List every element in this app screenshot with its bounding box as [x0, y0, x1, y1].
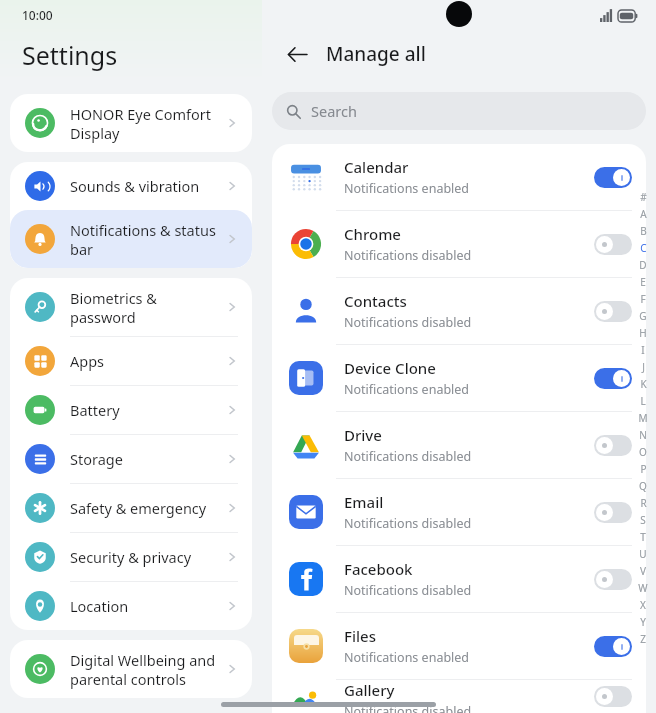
button[interactable]: Files	[272, 613, 646, 679]
button[interactable]: P	[635, 460, 651, 477]
staticText: Gallery	[344, 680, 395, 700]
button[interactable]: On	[594, 368, 632, 389]
button[interactable]: E	[635, 273, 651, 290]
button[interactable]: Drive	[272, 412, 646, 478]
staticText: I	[641, 343, 645, 357]
button[interactable]: Back	[280, 37, 314, 71]
staticText: D	[639, 258, 647, 272]
staticText: Location	[70, 596, 224, 616]
staticText: C	[640, 241, 647, 255]
staticText: Notifications enabled	[344, 180, 470, 197]
button[interactable]: T	[635, 528, 651, 545]
button[interactable]: Biometrics & password	[10, 278, 252, 336]
button[interactable]: R	[635, 494, 651, 511]
staticText: Z	[640, 632, 646, 646]
button[interactable]: Apps	[10, 337, 252, 385]
staticText: Search	[311, 101, 357, 121]
staticText: Notifications disabled	[344, 515, 472, 532]
button[interactable]: O	[635, 443, 651, 460]
button[interactable]: D	[635, 256, 651, 273]
button[interactable]: Off	[594, 435, 632, 456]
staticText: K	[640, 377, 647, 391]
button[interactable]: L	[635, 392, 651, 409]
staticText: Manage all	[326, 41, 426, 67]
staticText: P	[640, 462, 647, 476]
staticText: Chrome	[344, 224, 401, 244]
staticText: Notifications disabled	[344, 582, 472, 599]
button[interactable]: Sounds & vibration	[10, 162, 252, 210]
staticText: Device Clone	[344, 358, 436, 378]
staticText: A	[640, 207, 647, 221]
button[interactable]: U	[635, 545, 651, 562]
staticText: G	[639, 309, 647, 323]
staticText: Biometrics & password	[70, 288, 224, 327]
button[interactable]: K	[635, 375, 651, 392]
button[interactable]: I	[635, 341, 651, 358]
staticText: F	[640, 292, 646, 306]
staticText: E	[640, 275, 646, 289]
staticText: #	[640, 190, 647, 204]
staticText: Notifications disabled	[344, 247, 472, 264]
button[interactable]: W	[635, 579, 651, 596]
button[interactable]: On	[594, 636, 632, 657]
staticText: HONOR Eye Comfort Display	[70, 104, 224, 143]
button[interactable]: Notifications & status bar	[10, 210, 252, 268]
staticText: Email	[344, 492, 384, 512]
staticText: Facebook	[344, 559, 413, 579]
staticText: B	[640, 224, 647, 238]
button[interactable]: N	[635, 426, 651, 443]
staticText: W	[638, 581, 648, 595]
staticText: J	[642, 360, 645, 374]
button[interactable]: Battery	[10, 386, 252, 434]
staticText: V	[640, 564, 646, 578]
staticText: 10:00	[22, 7, 53, 23]
button[interactable]: Off	[594, 234, 632, 255]
staticText: Y	[640, 615, 646, 629]
button[interactable]: J	[635, 358, 651, 375]
staticText: Sounds & vibration	[70, 176, 224, 196]
button[interactable]: On	[594, 167, 632, 188]
button[interactable]: Contacts	[272, 278, 646, 344]
button[interactable]: Off	[594, 502, 632, 523]
staticText: Security & privacy	[70, 547, 224, 567]
button[interactable]: B	[635, 222, 651, 239]
button[interactable]: Storage	[10, 435, 252, 483]
button[interactable]: Location	[10, 582, 252, 630]
button[interactable]: Off	[594, 569, 632, 590]
button[interactable]: Y	[635, 613, 651, 630]
button[interactable]: Gallery	[272, 680, 646, 713]
button[interactable]: Search	[272, 92, 646, 130]
staticText: Digital Wellbeing and parental controls	[70, 650, 224, 689]
staticText: Calendar	[344, 157, 409, 177]
button[interactable]: Z	[635, 630, 651, 647]
button[interactable]: Email	[272, 479, 646, 545]
button[interactable]: Facebook	[272, 546, 646, 612]
button[interactable]: Off	[594, 301, 632, 322]
button[interactable]: G	[635, 307, 651, 324]
button[interactable]: F	[635, 290, 651, 307]
button[interactable]: Safety & emergency	[10, 484, 252, 532]
staticText: R	[640, 496, 647, 510]
button[interactable]: H	[635, 324, 651, 341]
button[interactable]: #	[635, 188, 651, 205]
button[interactable]: Calendar	[272, 144, 646, 210]
button[interactable]: M	[635, 409, 651, 426]
staticText: Drive	[344, 425, 382, 445]
staticText: Q	[639, 479, 647, 493]
button[interactable]: Device Clone	[272, 345, 646, 411]
button[interactable]: V	[635, 562, 651, 579]
staticText: U	[639, 547, 647, 561]
button[interactable]: Security & privacy	[10, 533, 252, 581]
button[interactable]: HONOR Eye Comfort Display	[10, 94, 252, 152]
staticText: Notifications enabled	[344, 649, 470, 666]
button[interactable]: X	[635, 596, 651, 613]
button[interactable]: Chrome	[272, 211, 646, 277]
button[interactable]: S	[635, 511, 651, 528]
staticText: Notifications & status bar	[70, 220, 224, 259]
button[interactable]: Q	[635, 477, 651, 494]
button[interactable]: Off	[594, 686, 632, 707]
button[interactable]: Digital Wellbeing and parental controls	[10, 640, 252, 698]
button[interactable]: C	[635, 239, 651, 256]
button[interactable]: A	[635, 205, 651, 222]
staticText: O	[639, 445, 647, 459]
